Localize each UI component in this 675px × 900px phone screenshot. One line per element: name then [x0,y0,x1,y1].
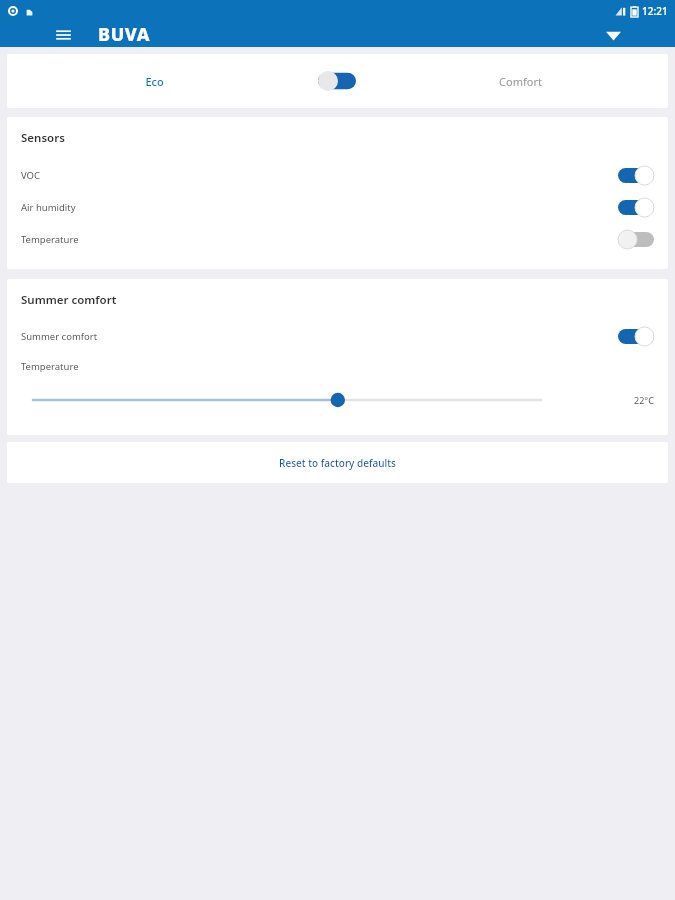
button[interactable]: Open navigation menu [52,24,74,46]
staticText: BUVA [98,22,151,47]
button[interactable]: Summer comfort [7,320,668,352]
button[interactable]: Temperature slider [33,387,541,413]
button[interactable]: Eco [7,54,302,108]
staticText: Comfort [499,74,542,89]
staticText: VOC [21,169,618,182]
staticText: Summer comfort [21,292,117,308]
button[interactable]: Temperature [7,223,668,255]
staticText: 12:21 [642,4,668,18]
staticText: Temperature [21,360,79,373]
staticText: Air humidity [21,201,618,214]
button[interactable]: Comfort [372,54,668,108]
button[interactable]: Wi-Fi connection [601,23,625,47]
staticText: Reset to factory defaults [279,456,396,470]
staticText: Summer comfort [21,330,618,343]
staticText: Sensors [21,130,65,146]
staticText: 22°C [634,394,654,406]
button[interactable]: VOC [7,159,668,191]
staticText: Eco [145,74,164,89]
button[interactable]: Reset to factory defaults [7,442,668,483]
staticText: Temperature [21,233,618,246]
button[interactable]: Toggle ventilation mode [302,54,372,108]
button[interactable]: Air humidity [7,191,668,223]
